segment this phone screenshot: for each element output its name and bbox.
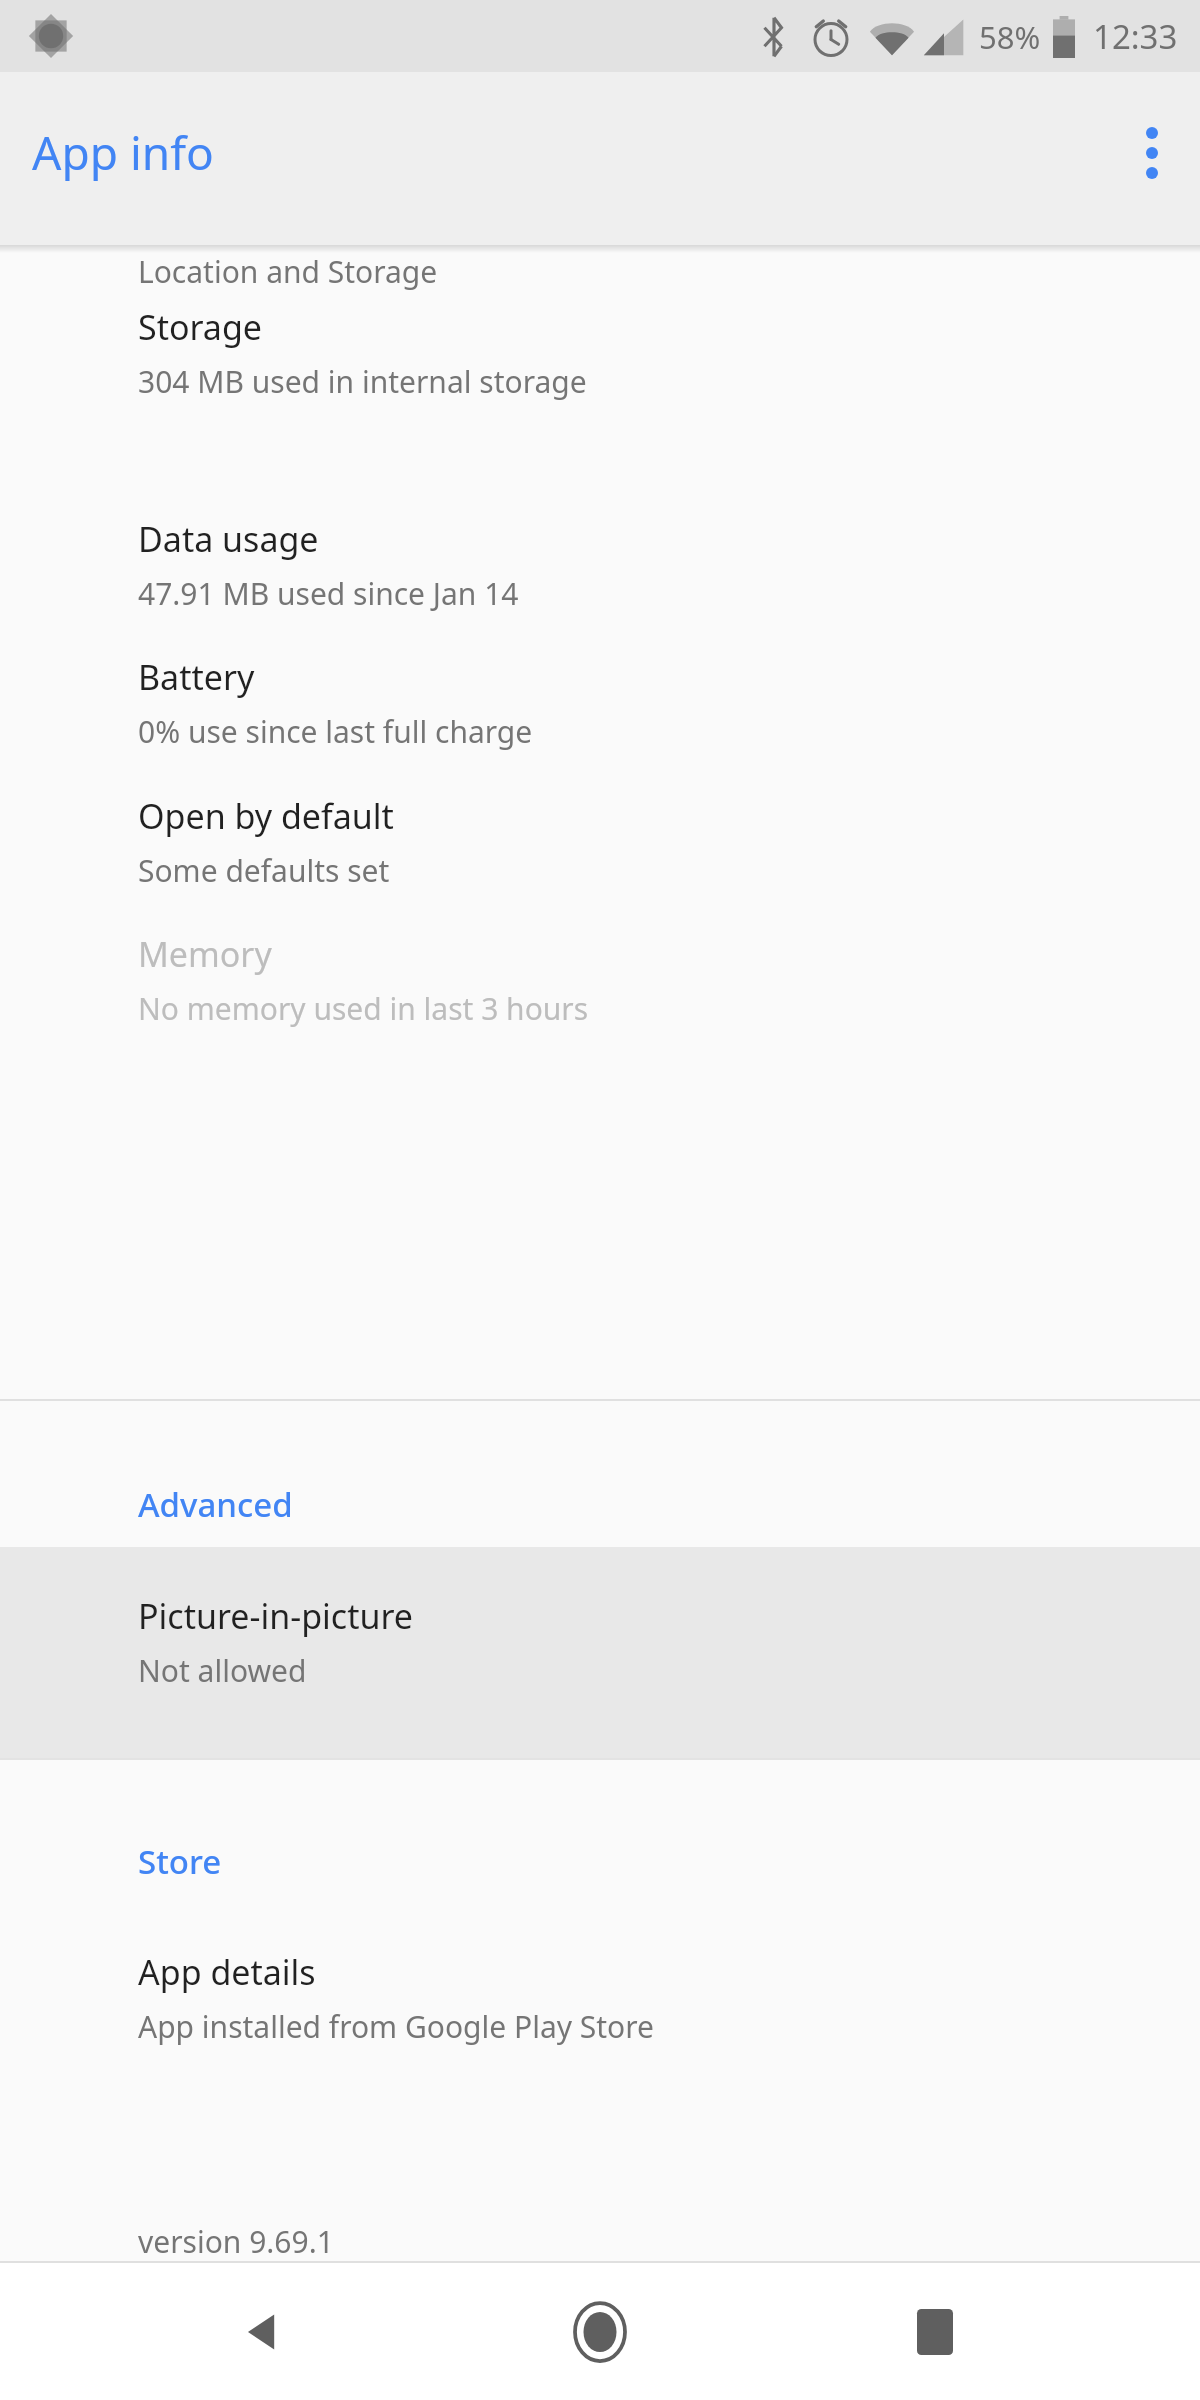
staticText: 47.91 MB used since Jan 14 xyxy=(138,573,519,614)
staticText: Advanced xyxy=(138,1482,293,1527)
staticText: Picture-in-picture xyxy=(138,1593,413,1639)
button[interactable]: Home xyxy=(540,2272,660,2392)
button[interactable]: Open by default xyxy=(0,747,1200,959)
staticText: Store xyxy=(138,1839,222,1884)
staticText: Some defaults set xyxy=(138,850,390,891)
staticText: Location and Storage xyxy=(138,253,438,292)
staticText: 0% use since last full charge xyxy=(138,711,533,752)
button[interactable]: Storage xyxy=(0,258,1200,470)
staticText: App installed from Google Play Store xyxy=(138,2006,654,2047)
staticText: Memory xyxy=(138,931,272,977)
button[interactable]: Recent apps xyxy=(875,2272,995,2392)
button[interactable]: More options xyxy=(1104,105,1200,201)
button[interactable]: Store xyxy=(0,1818,1200,1904)
button[interactable]: Data usage xyxy=(0,470,1200,682)
staticText: version 9.69.1 xyxy=(138,2221,334,2261)
staticText: Storage xyxy=(138,304,263,350)
staticText: 12:33 xyxy=(1093,14,1178,59)
staticText: Open by default xyxy=(138,793,394,839)
button[interactable]: App details xyxy=(0,1903,1200,2115)
button[interactable]: Battery xyxy=(0,608,1200,820)
button[interactable]: Picture-in-picture xyxy=(0,1547,1200,1758)
staticText: No memory used in last 3 hours xyxy=(138,988,589,1029)
staticText: Battery xyxy=(138,654,255,700)
staticText: Not allowed xyxy=(138,1650,307,1691)
button[interactable]: Back xyxy=(205,2272,325,2392)
button[interactable]: Advanced xyxy=(0,1461,1200,1547)
staticText: 58% xyxy=(979,16,1041,58)
staticText: App details xyxy=(138,1949,316,1995)
staticText: Data usage xyxy=(138,516,319,562)
staticText: 304 MB used in internal storage xyxy=(138,361,587,402)
staticText: App info xyxy=(32,121,214,184)
